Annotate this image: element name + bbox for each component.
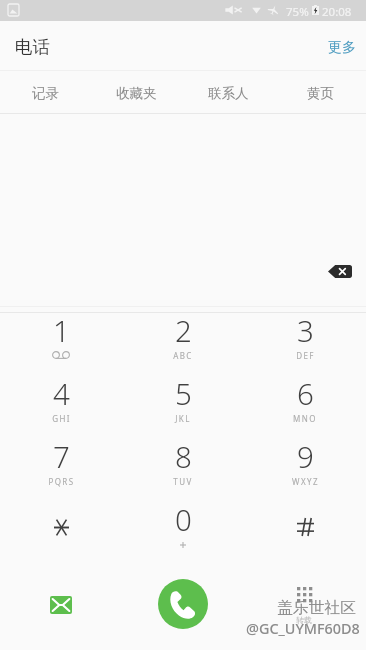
- staticText: 75%: [286, 4, 309, 20]
- staticText: 0: [175, 499, 192, 539]
- staticText: 盖乐世社区: [277, 598, 356, 618]
- button[interactable]: 2: [122, 313, 244, 376]
- staticText: 电话: [15, 36, 50, 58]
- button[interactable]: 1: [0, 313, 122, 376]
- staticText: TUV: [173, 476, 193, 487]
- staticText: 收藏夹: [116, 85, 157, 102]
- button[interactable]: 8: [122, 439, 244, 502]
- staticText: 7: [53, 436, 70, 476]
- button[interactable]: 5: [122, 376, 244, 439]
- button[interactable]: [244, 502, 366, 565]
- staticText: PQRS: [48, 476, 75, 487]
- staticText: GHI: [52, 413, 71, 424]
- button[interactable]: 0: [122, 502, 244, 565]
- button[interactable]: 9: [244, 439, 366, 502]
- staticText: 20:08: [322, 4, 352, 20]
- button[interactable]: [0, 502, 122, 565]
- staticText: 5: [175, 373, 192, 413]
- staticText: 更多: [328, 39, 356, 57]
- button[interactable]: 收藏夹: [91, 71, 182, 114]
- staticText: 9: [297, 436, 314, 476]
- staticText: 联系人: [208, 85, 249, 102]
- staticText: 记录: [32, 85, 59, 102]
- staticText: 3: [297, 310, 314, 350]
- staticText: 1: [53, 310, 70, 350]
- staticText: 8: [175, 436, 192, 476]
- staticText: DEF: [296, 350, 315, 361]
- button[interactable]: Backspace: [328, 265, 352, 278]
- button[interactable]: Call: [158, 579, 208, 629]
- staticText: ABC: [173, 350, 193, 361]
- staticText: 4: [53, 373, 70, 413]
- staticText: 2: [175, 310, 192, 350]
- staticText: 转载: [296, 615, 312, 625]
- button[interactable]: 记录: [0, 71, 91, 114]
- button[interactable]: 3: [244, 313, 366, 376]
- button[interactable]: 联系人: [182, 71, 274, 114]
- staticText: 黄页: [307, 85, 334, 102]
- staticText: @GC_UYMF60D8: [246, 619, 360, 639]
- button[interactable]: 6: [244, 376, 366, 439]
- button[interactable]: 黄页: [274, 71, 366, 114]
- button[interactable]: Message: [50, 596, 72, 614]
- button[interactable]: 更多: [310, 27, 366, 65]
- staticText: 6: [297, 373, 314, 413]
- button[interactable]: 4: [0, 376, 122, 439]
- button[interactable]: 7: [0, 439, 122, 502]
- staticText: MNO: [293, 413, 317, 424]
- staticText: JKL: [175, 413, 191, 424]
- staticText: WXYZ: [292, 476, 319, 487]
